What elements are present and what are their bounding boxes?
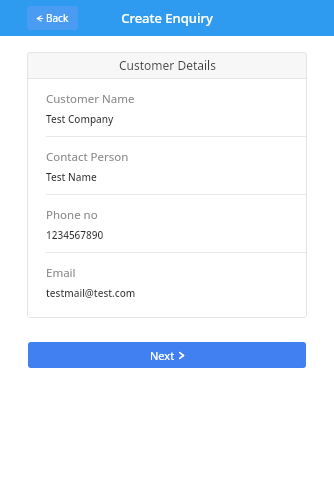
button[interactable]: Customer Name <box>27 79 307 137</box>
staticText: Customer Name <box>46 91 135 107</box>
staticText: Test Name <box>46 170 97 184</box>
staticText: testmail@test.com <box>46 286 136 300</box>
other: Next <box>178 352 185 359</box>
button[interactable]: Phone no <box>27 195 307 253</box>
staticText: Test Company <box>46 112 114 126</box>
staticText: Email <box>46 265 76 281</box>
button[interactable]: Contact Person <box>27 137 307 195</box>
staticText: Phone no <box>46 207 98 223</box>
staticText: 1234567890 <box>46 228 104 242</box>
button[interactable]: Back <box>27 6 78 30</box>
staticText: Contact Person <box>46 149 129 165</box>
staticText: Next <box>150 348 175 363</box>
staticText: Customer Details <box>119 57 216 73</box>
staticText: Create Enquiry <box>0 9 334 27</box>
staticText: Back <box>46 11 69 25</box>
button[interactable]: Email <box>27 253 307 318</box>
button[interactable]: Next <box>28 342 306 368</box>
